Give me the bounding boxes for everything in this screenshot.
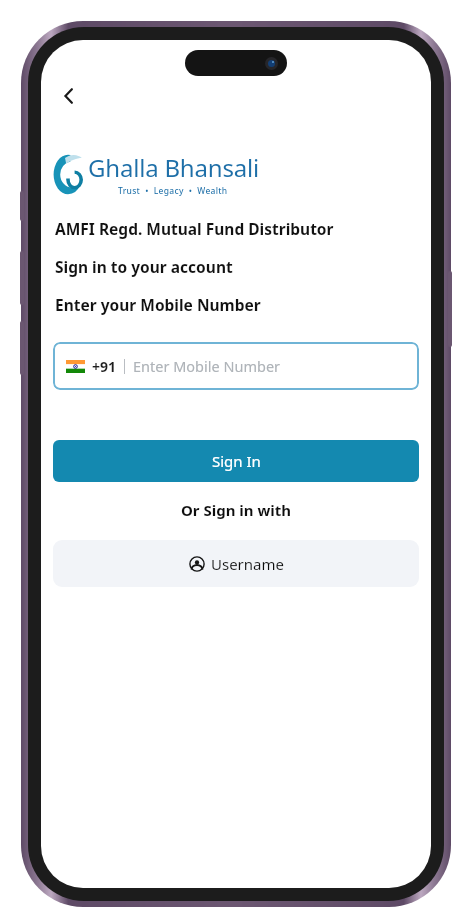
button[interactable]: Back — [49, 76, 89, 116]
staticText: Username — [211, 554, 284, 574]
staticText: Sign in to your account — [55, 256, 233, 277]
button[interactable]: Username — [53, 540, 419, 587]
staticText: Or Sign in with — [41, 500, 431, 520]
staticText: Sign In — [212, 451, 261, 471]
staticText: Enter your Mobile Number — [55, 294, 261, 315]
staticText: +91 — [92, 357, 117, 376]
staticText: AMFI Regd. Mutual Fund Distributor — [55, 218, 334, 239]
staticText: Trust • Legacy • Wealth — [118, 185, 228, 197]
staticText: Enter Mobile Number — [133, 356, 281, 376]
button[interactable]: +91 — [53, 342, 419, 390]
staticText: Ghalla Bhansali — [88, 151, 259, 184]
button[interactable]: Sign In — [53, 440, 419, 482]
